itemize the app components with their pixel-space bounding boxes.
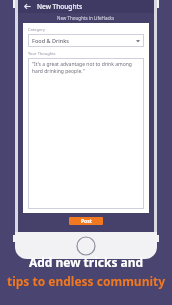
staticText: Add new tricks and xyxy=(0,254,172,270)
staticText: New Thoughts xyxy=(37,2,83,11)
staticText: Food & Drinks xyxy=(32,37,136,44)
button[interactable]: "It's a great advantage not to drink amo… xyxy=(28,58,144,209)
staticText: Post xyxy=(81,218,92,225)
staticText: New Thoughts in LifeHacks xyxy=(57,15,115,21)
button[interactable]: Food & Drinks xyxy=(28,34,144,47)
staticText: Your Thoughts xyxy=(28,51,56,56)
staticText: Category xyxy=(28,27,46,32)
staticText: "It's a great advantage not to drink amo… xyxy=(32,61,140,75)
button[interactable]: Post xyxy=(69,217,103,225)
button[interactable]: Back xyxy=(22,1,33,12)
staticText: tips to endless community xyxy=(0,273,172,289)
